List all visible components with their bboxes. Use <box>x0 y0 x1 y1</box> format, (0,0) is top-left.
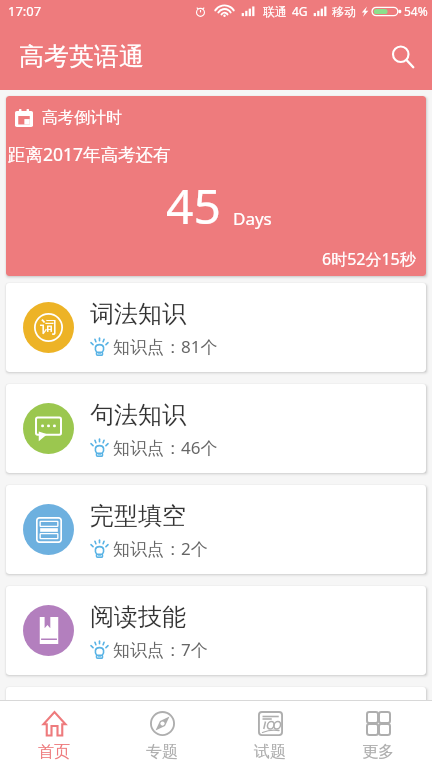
staticText: 知识点：46个 <box>113 436 218 459</box>
staticText: 词法知识 <box>90 299 186 329</box>
staticText: 知识点：2个 <box>113 537 208 560</box>
staticText: 移动 <box>332 4 356 19</box>
staticText: 17:07 <box>8 2 42 20</box>
staticText: 专题 <box>146 742 178 762</box>
staticText: 高考倒计时 <box>42 108 122 128</box>
button[interactable]: 试题 <box>216 701 324 768</box>
staticText: 词 <box>40 317 57 338</box>
button[interactable]: 专题 <box>108 701 216 768</box>
staticText: 距离2017年高考还有 <box>8 142 171 166</box>
button[interactable]: 高考倒计时 <box>6 96 426 276</box>
staticText: 6时52分15秒 <box>322 248 416 270</box>
staticText: 54% <box>404 3 428 19</box>
staticText: 完型填空 <box>90 501 186 531</box>
staticText: 句法知识 <box>90 400 186 430</box>
button[interactable]: 句法知识 <box>6 384 426 473</box>
button[interactable]: 更多 <box>324 701 432 768</box>
staticText: 高考英语通 <box>19 41 144 72</box>
staticText: 45 <box>166 173 221 238</box>
staticText: 阅读技能 <box>90 602 186 632</box>
staticText: 更多 <box>362 742 394 762</box>
button[interactable]: Search <box>381 35 423 77</box>
staticText: 4G <box>292 3 308 19</box>
staticText: Days <box>233 207 272 230</box>
button[interactable]: 首页 <box>0 701 108 768</box>
staticText: 试题 <box>254 742 286 762</box>
button[interactable]: 阅读技能 <box>6 586 426 675</box>
staticText: 首页 <box>38 742 70 762</box>
staticText: 知识点：7个 <box>113 638 208 661</box>
staticText: 联通 <box>263 4 287 19</box>
button[interactable]: 完型填空 <box>6 485 426 574</box>
button[interactable]: 词 <box>6 283 426 372</box>
staticText: 知识点：81个 <box>113 335 218 358</box>
